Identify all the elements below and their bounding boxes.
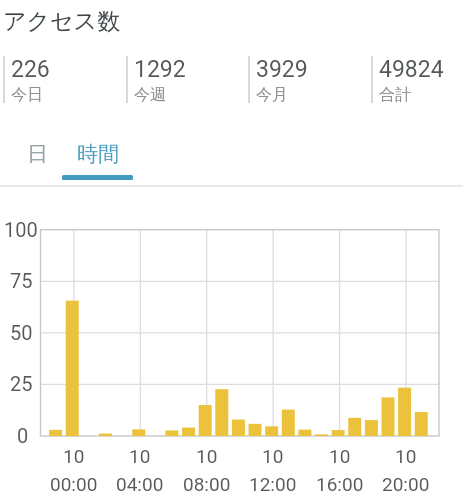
button[interactable]: 226 xyxy=(3,55,125,105)
staticText: 日 xyxy=(27,141,48,167)
staticText: 226 xyxy=(11,56,50,83)
staticText: 時間 xyxy=(77,141,119,167)
staticText: 今日 xyxy=(11,85,43,105)
staticText: 合計 xyxy=(379,85,411,105)
staticText: 10 xyxy=(129,445,151,467)
staticText: 00:00 xyxy=(50,473,98,495)
staticText: 50 xyxy=(10,321,33,344)
staticText: 49824 xyxy=(379,56,444,83)
staticText: 12:00 xyxy=(249,473,297,495)
button[interactable]: 日 xyxy=(10,132,65,176)
staticText: 10 xyxy=(395,445,417,467)
staticText: 08:00 xyxy=(183,473,231,495)
staticText: 04:00 xyxy=(116,473,164,495)
staticText: 10 xyxy=(196,445,218,467)
staticText: 1292 xyxy=(134,56,186,83)
staticText: 10 xyxy=(63,445,85,467)
staticText: 0 xyxy=(17,424,29,447)
button[interactable]: 時間 xyxy=(63,132,132,176)
staticText: 25 xyxy=(10,372,33,395)
staticText: 今月 xyxy=(256,85,288,105)
staticText: 20:00 xyxy=(382,473,430,495)
button[interactable]: 1292 xyxy=(126,55,248,105)
staticText: 100 xyxy=(4,218,38,241)
button[interactable]: 49824 xyxy=(371,55,463,105)
staticText: 今週 xyxy=(134,85,166,105)
staticText: 75 xyxy=(10,269,33,292)
staticText: アクセス数 xyxy=(3,7,121,36)
button[interactable]: 3929 xyxy=(248,55,370,105)
staticText: 10 xyxy=(329,445,351,467)
staticText: 3929 xyxy=(256,56,308,83)
staticText: 10 xyxy=(262,445,284,467)
staticText: 16:00 xyxy=(316,473,364,495)
